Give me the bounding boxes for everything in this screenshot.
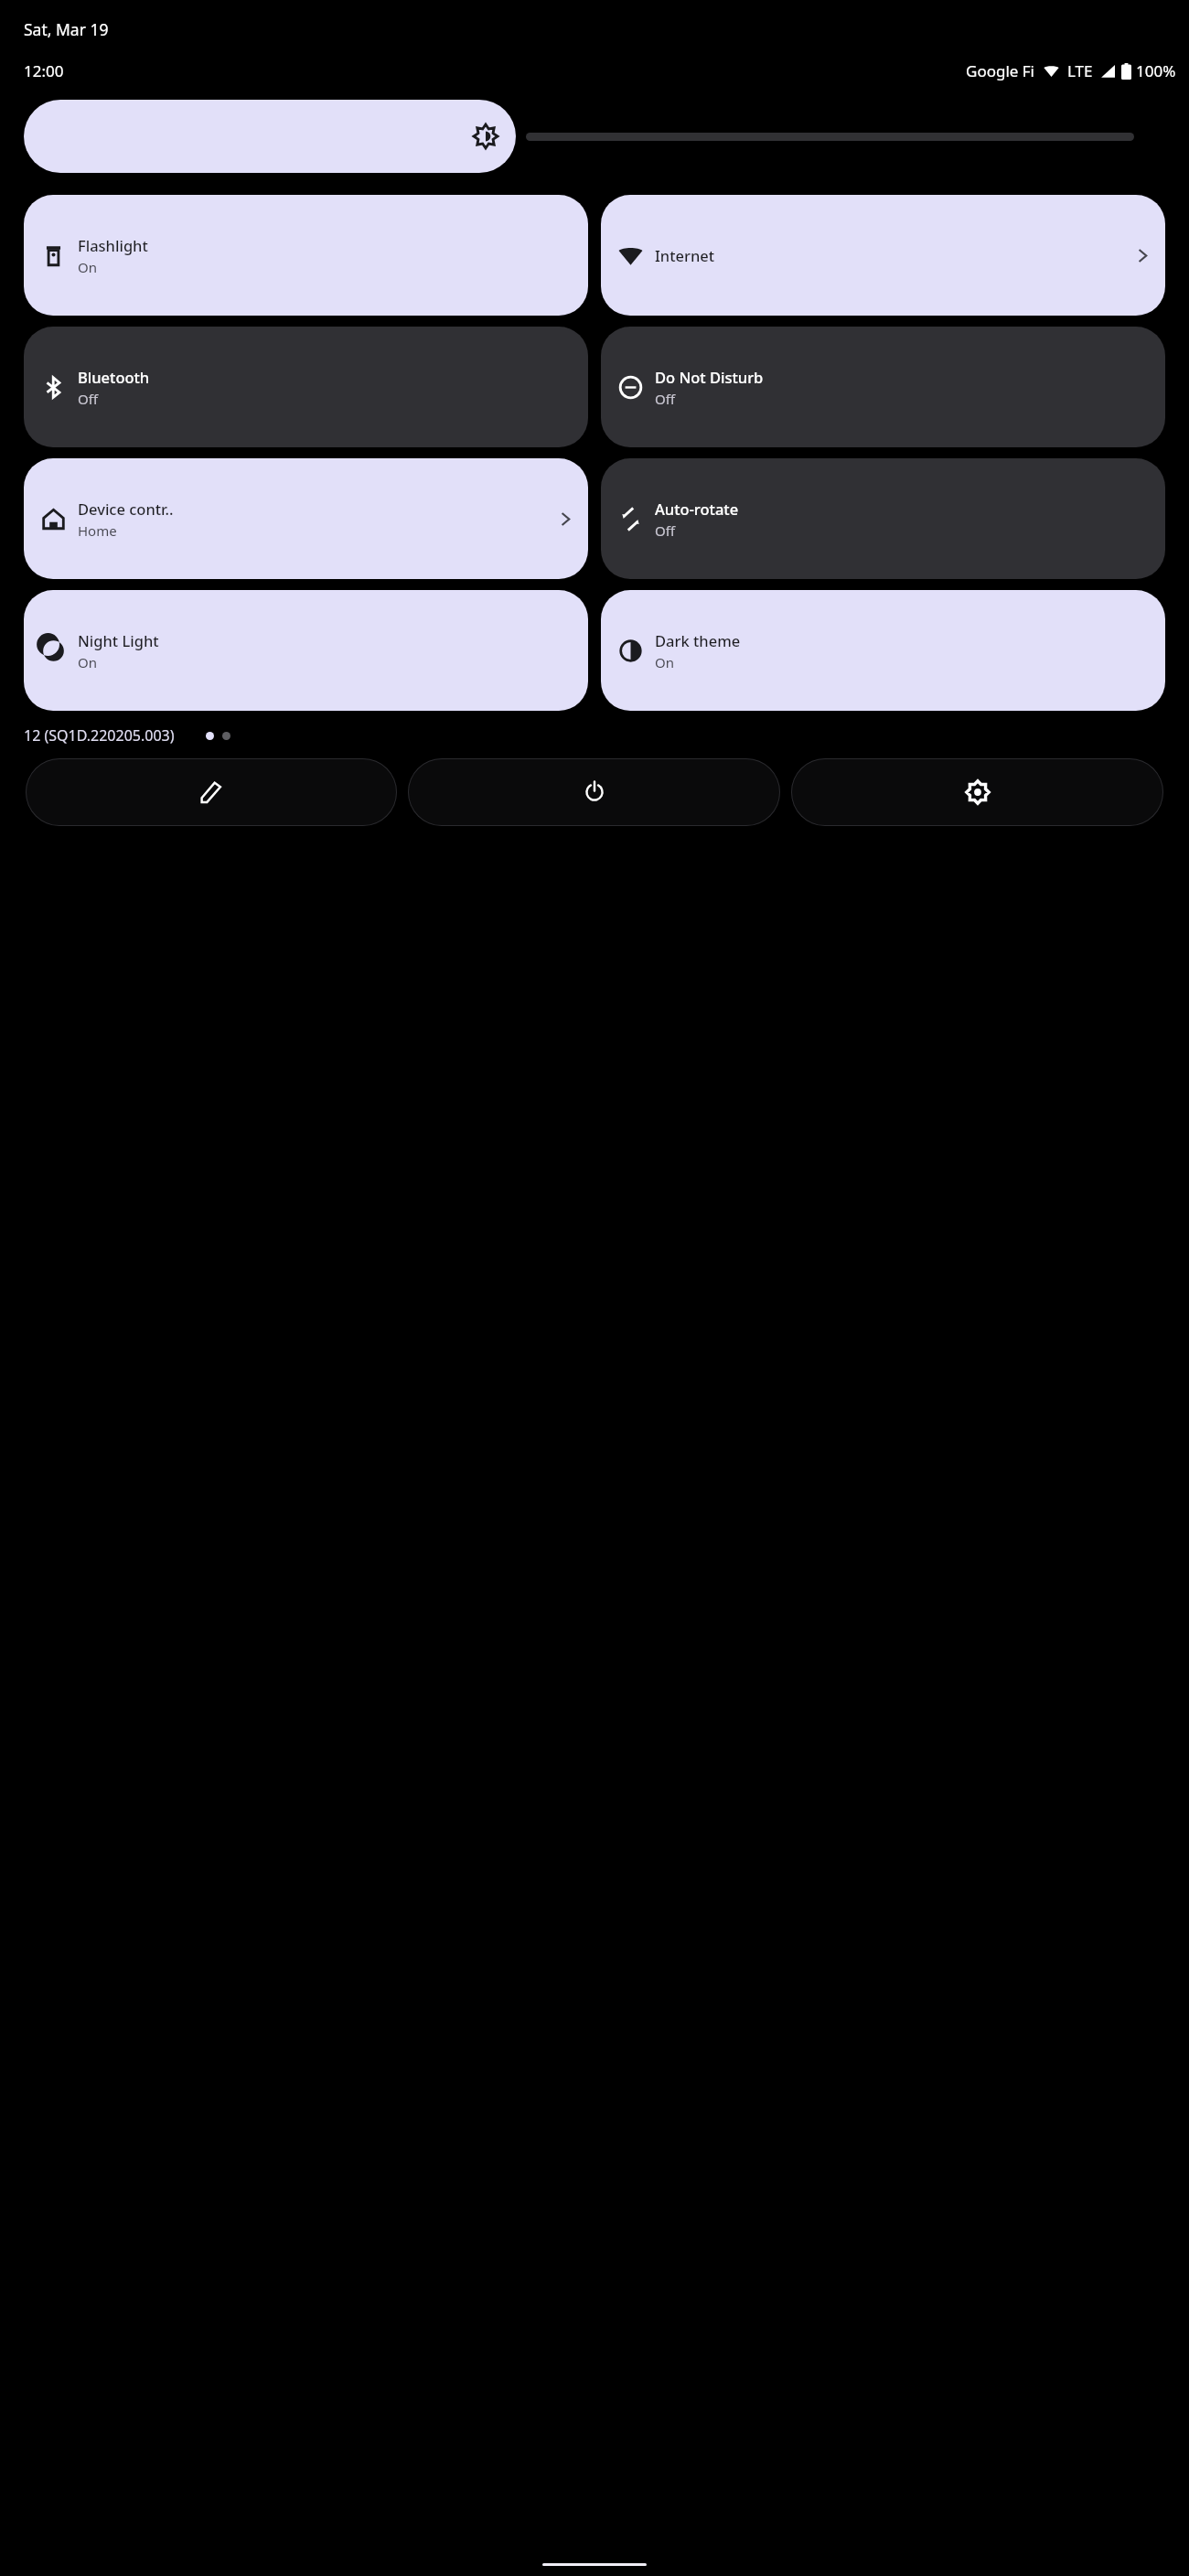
staticText: Off [655,390,676,408]
button[interactable]: Power [408,758,780,826]
staticText: Off [655,521,676,540]
staticText: On [78,653,97,671]
staticText: On [655,653,674,671]
staticText: Night Light [78,630,159,650]
staticText: LTE [1067,60,1093,81]
button[interactable]: Internet [601,195,1165,316]
staticText: Home [78,521,117,540]
button[interactable]: Bluetooth [24,327,588,447]
button[interactable]: Flashlight [24,195,588,316]
staticText: Flashlight [78,235,148,255]
staticText: 12 (SQ1D.220205.003) [24,725,175,746]
staticText: Google Fi [966,60,1035,81]
staticText: Off [78,390,99,408]
button[interactable]: Settings [791,758,1163,826]
staticText: Sat, Mar 19 [24,18,109,40]
button[interactable]: Do Not Disturb [601,327,1165,447]
staticText: On [78,258,97,276]
button[interactable]: Dark theme [601,590,1165,711]
staticText: Bluetooth [78,367,150,387]
staticText: Do Not Disturb [655,367,764,387]
staticText: 12:00 [24,60,64,81]
staticText: Internet [655,245,715,265]
button[interactable]: Night Light [24,590,588,711]
button[interactable]: Device contr.. [24,458,588,579]
staticText: Device contr.. [78,499,174,519]
button[interactable]: Edit [26,758,397,826]
staticText: Auto-rotate [655,499,739,519]
button[interactable]: Auto-rotate [601,458,1165,579]
staticText: Dark theme [655,630,741,650]
staticText: 100% [1136,60,1176,81]
button[interactable] [24,100,516,173]
